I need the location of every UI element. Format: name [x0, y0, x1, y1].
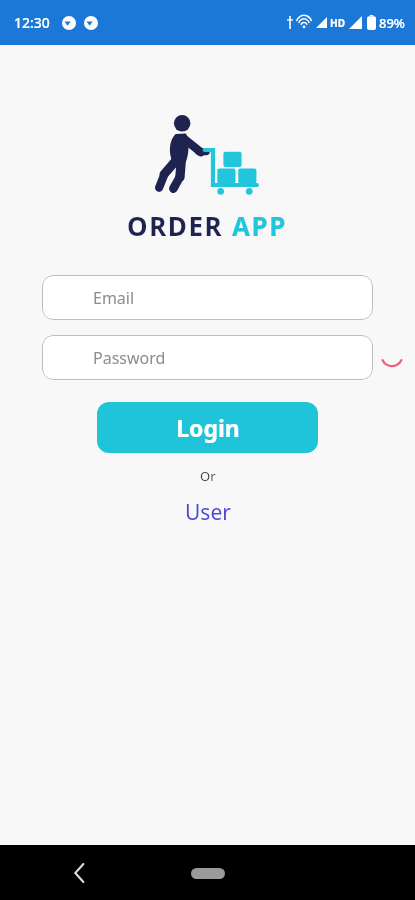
- staticText: User: [185, 498, 231, 527]
- button[interactable]: Back: [62, 856, 96, 890]
- staticText: Login: [176, 412, 240, 443]
- button[interactable]: Home: [186, 862, 230, 884]
- staticText: Or: [200, 467, 216, 485]
- staticText: APP: [232, 208, 288, 243]
- staticText: Password: [93, 347, 166, 369]
- staticText: Email: [93, 287, 135, 309]
- button[interactable]: Email: [42, 275, 373, 320]
- staticText: HD: [330, 16, 345, 30]
- staticText: 89%: [379, 14, 405, 32]
- staticText: 12:30: [14, 13, 50, 32]
- button[interactable]: Login: [97, 402, 318, 453]
- button[interactable]: User: [173, 496, 243, 529]
- button[interactable]: Password: [42, 335, 373, 380]
- staticText: ORDER: [127, 208, 224, 243]
- button[interactable]: Toggle password visibility: [379, 345, 405, 371]
